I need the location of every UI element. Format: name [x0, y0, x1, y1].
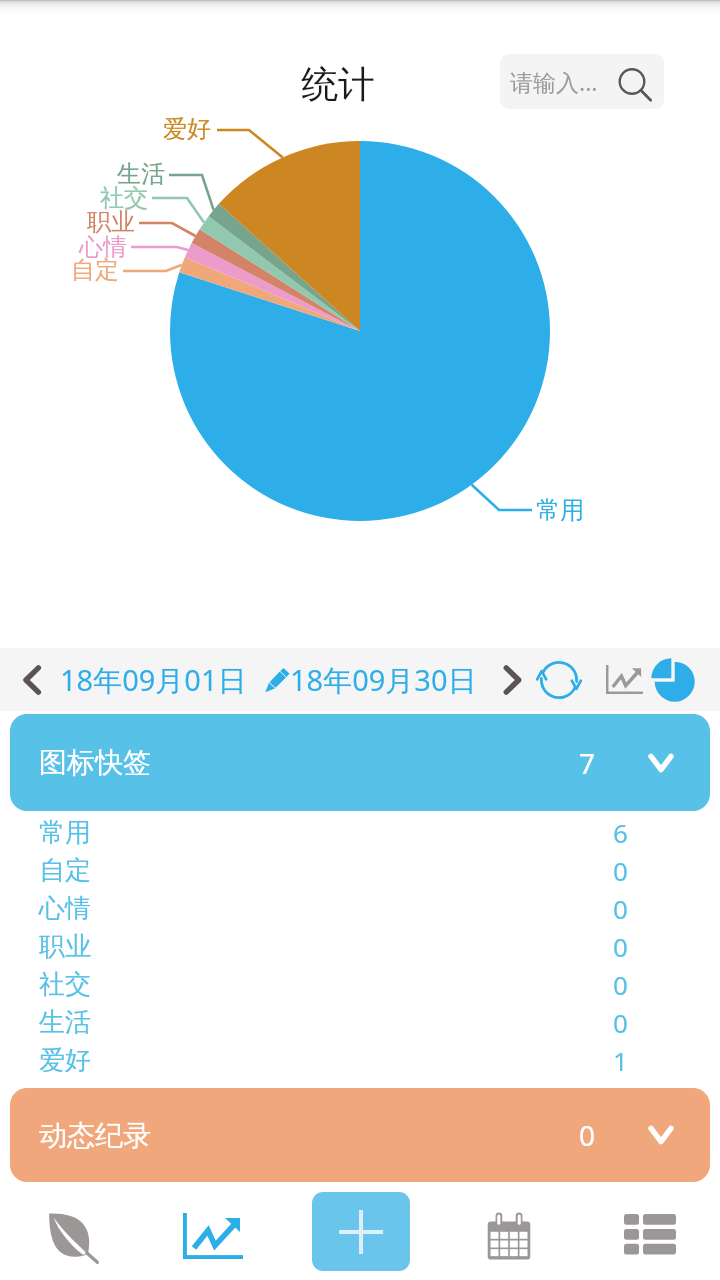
staticText: 18年09月30日	[290, 660, 477, 700]
staticText: 爱好	[39, 1044, 91, 1077]
button[interactable]: Pie chart	[646, 648, 700, 711]
staticText: 自定	[71, 255, 119, 285]
staticText: 常用	[536, 495, 584, 525]
button[interactable]: 18年09月30日	[290, 648, 477, 711]
button[interactable]: 爱好	[0, 1041, 720, 1079]
staticText: 18年09月01日	[60, 660, 247, 700]
button[interactable]: Line chart	[598, 648, 650, 711]
button[interactable]: Edit date range	[264, 667, 290, 693]
button[interactable]: 社交	[0, 965, 720, 1003]
staticText: 统计	[301, 61, 375, 108]
staticText: 社交	[39, 968, 91, 1001]
button[interactable]: Previous month	[6, 648, 58, 711]
staticText: 心情	[79, 232, 127, 262]
staticText: 职业	[87, 207, 135, 237]
staticText: 1	[613, 1043, 628, 1078]
staticText: 0	[579, 1116, 596, 1154]
button[interactable]: 动态纪录	[10, 1088, 710, 1182]
button[interactable]: 心情	[0, 889, 720, 927]
button[interactable]: Notes	[0, 1182, 142, 1280]
button[interactable]: Refresh	[532, 648, 586, 711]
button[interactable]: 图标快签	[10, 714, 710, 811]
button[interactable]: Calendar	[438, 1182, 579, 1280]
staticText: 7	[579, 744, 596, 782]
button[interactable]: 生活	[0, 1003, 720, 1041]
button[interactable]: Statistics	[142, 1182, 283, 1280]
staticText: 6	[613, 815, 628, 850]
button[interactable]: Next month	[486, 648, 538, 711]
button[interactable]: 职业	[0, 927, 720, 965]
button[interactable]: 请输入...	[500, 54, 664, 109]
staticText: 0	[613, 853, 628, 888]
staticText: 0	[613, 929, 628, 964]
staticText: 生活	[39, 1006, 91, 1039]
staticText: 请输入...	[510, 66, 598, 97]
staticText: 动态纪录	[39, 1118, 151, 1153]
staticText: 常用	[39, 816, 91, 849]
staticText: 社交	[100, 183, 148, 213]
staticText: 图标快签	[39, 745, 151, 780]
staticText: 0	[613, 1005, 628, 1040]
button[interactable]: Add	[312, 1192, 410, 1271]
button[interactable]: 18年09月01日	[60, 648, 247, 711]
staticText: 职业	[39, 930, 91, 963]
staticText: 0	[613, 967, 628, 1002]
staticText: 生活	[117, 159, 165, 189]
staticText: 心情	[39, 892, 91, 925]
staticText: 0	[613, 891, 628, 926]
button[interactable]: List	[579, 1182, 720, 1280]
staticText: 自定	[39, 854, 91, 887]
button[interactable]: 常用	[0, 813, 720, 851]
staticText: 爱好	[163, 114, 211, 144]
button[interactable]: 自定	[0, 851, 720, 889]
